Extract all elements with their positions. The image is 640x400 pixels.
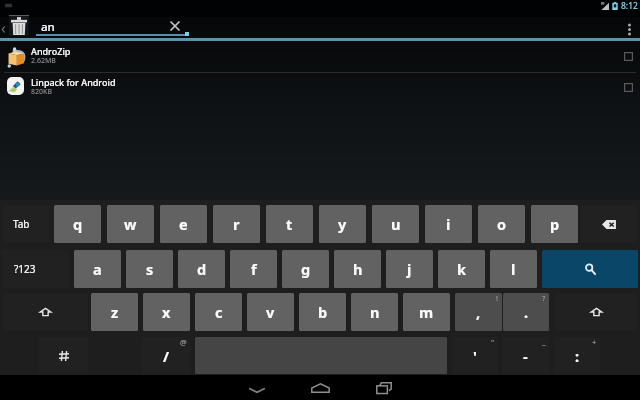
staticText: m [419, 302, 434, 322]
button[interactable]: Home [288, 375, 352, 400]
staticText: / [163, 346, 170, 366]
button[interactable]: - [502, 337, 549, 374]
staticText: r [233, 214, 240, 234]
button[interactable]: s [126, 250, 173, 288]
button[interactable]: Linpack for Android [0, 72, 640, 103]
button[interactable]: u [372, 205, 419, 243]
button[interactable]: More options [618, 17, 640, 41]
staticText: ?123 [14, 262, 36, 276]
button[interactable]: c [195, 293, 242, 331]
button[interactable]: i [425, 205, 472, 243]
staticText: k [457, 259, 466, 279]
button[interactable]: p [531, 205, 578, 243]
button[interactable]: Switch keyboard [39, 337, 88, 374]
button[interactable]: g [282, 250, 329, 288]
button[interactable]: . [503, 293, 549, 331]
button[interactable]: Shift [554, 293, 638, 331]
button[interactable]: y [319, 205, 366, 243]
staticText: Tab [13, 217, 30, 231]
button[interactable]: j [386, 250, 433, 288]
button[interactable]: ' [452, 337, 498, 374]
button[interactable]: r [213, 205, 260, 243]
staticText: . [524, 302, 529, 322]
button[interactable]: Clear query [166, 17, 184, 35]
button[interactable]: e [160, 205, 207, 243]
button[interactable]: v [247, 293, 294, 331]
button[interactable]: k [438, 250, 485, 288]
staticText: d [197, 259, 207, 279]
staticText: v [266, 302, 275, 322]
staticText: c [215, 302, 223, 322]
staticText: p [550, 214, 560, 234]
staticText: : [575, 346, 580, 366]
staticText: ! [496, 293, 499, 303]
staticText: i [446, 214, 451, 234]
staticText: 2.62MB [31, 56, 56, 66]
staticText: n [370, 302, 380, 322]
button[interactable]: l [490, 250, 537, 288]
staticText: Linpack for Android [31, 76, 116, 88]
staticText: " [491, 337, 495, 347]
staticText: z [111, 302, 119, 322]
button[interactable]: h [334, 250, 381, 288]
staticText: ' [473, 346, 477, 366]
button[interactable]: w [107, 205, 154, 243]
staticText: g [301, 259, 311, 279]
button[interactable]: n [351, 293, 398, 331]
staticText: l [511, 259, 516, 279]
button[interactable]: Shift [2, 293, 88, 331]
button[interactable]: : [554, 337, 600, 374]
button[interactable]: ?123 [2, 250, 69, 288]
button[interactable]: / [142, 337, 190, 374]
button[interactable]: a [74, 250, 121, 288]
staticText: q [73, 214, 83, 234]
staticText: w [124, 214, 137, 234]
staticText: f [251, 259, 257, 279]
button[interactable]: t [266, 205, 313, 243]
button[interactable]: Hide keyboard [225, 375, 289, 400]
button[interactable]: o [478, 205, 525, 243]
button[interactable]: Back [0, 17, 9, 41]
staticText: e [179, 214, 188, 234]
staticText: t [286, 214, 293, 234]
staticText: , [476, 302, 481, 322]
staticText: y [338, 214, 347, 234]
button[interactable]: AndroZip [0, 41, 640, 72]
staticText: _ [542, 337, 546, 347]
staticText: x [162, 302, 171, 322]
button[interactable]: Select app [618, 46, 638, 66]
button[interactable]: , [455, 293, 502, 331]
staticText: u [391, 214, 401, 234]
staticText: + [592, 337, 597, 347]
staticText: 8:12 [621, 0, 638, 12]
staticText: @ [180, 337, 187, 347]
staticText: AndroZip [31, 45, 71, 57]
button[interactable]: Tab [2, 205, 49, 243]
button[interactable]: d [178, 250, 225, 288]
staticText: h [353, 259, 363, 279]
button[interactable]: Select app [618, 77, 638, 97]
staticText: s [146, 259, 154, 279]
staticText: o [497, 214, 507, 234]
staticText: 820KB [31, 87, 53, 97]
button[interactable]: Search [542, 250, 638, 288]
staticText: b [318, 302, 328, 322]
staticText: ? [542, 293, 546, 303]
button[interactable]: m [403, 293, 450, 331]
button[interactable]: f [230, 250, 277, 288]
staticText: an [41, 19, 55, 35]
button[interactable]: x [143, 293, 190, 331]
staticText: - [523, 346, 528, 366]
button[interactable]: b [299, 293, 346, 331]
staticText: j [407, 259, 412, 279]
button[interactable]: Recent apps [352, 375, 416, 400]
button[interactable]: q [54, 205, 101, 243]
staticText: a [93, 259, 102, 279]
button[interactable]: z [91, 293, 138, 331]
button[interactable]: Backspace [581, 205, 638, 243]
